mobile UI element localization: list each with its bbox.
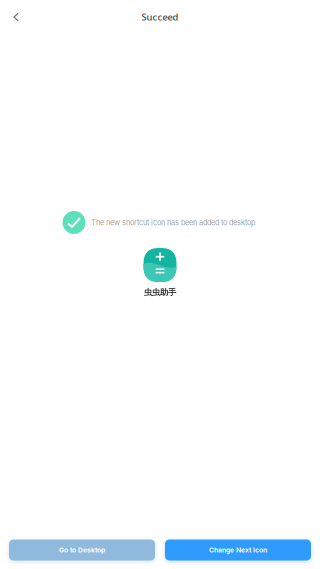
staticText: The new shortcut icon has been added to …: [91, 218, 255, 227]
button[interactable]: Go to Desktop: [9, 539, 155, 560]
staticText: Succeed: [141, 11, 178, 23]
staticText: 虫虫助手: [144, 287, 176, 297]
button[interactable]: Change Next Icon: [165, 539, 311, 560]
staticText: Go to Desktop: [59, 546, 105, 554]
button[interactable]: Back: [0, 1, 31, 32]
staticText: Change Next Icon: [209, 546, 267, 554]
